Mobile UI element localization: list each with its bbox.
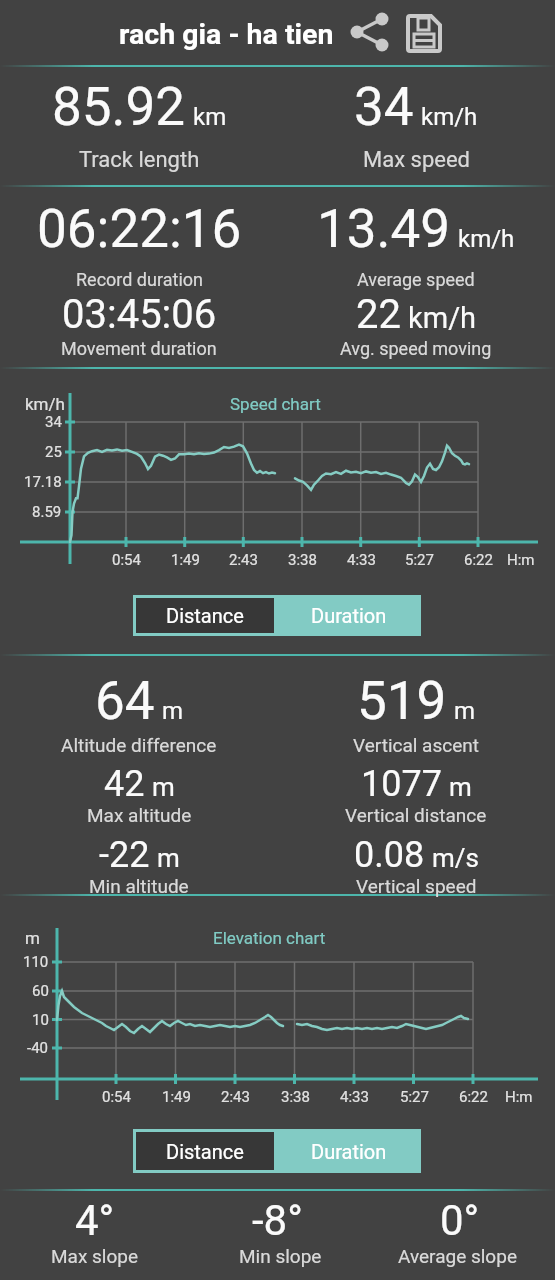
staticText: Movement duration (61, 338, 217, 359)
staticText: m (157, 843, 180, 873)
staticText: Vertical distance (345, 804, 487, 826)
staticText: 0:54 (102, 1088, 131, 1106)
staticText: 13.49 (317, 198, 451, 260)
staticText: 03:45:06 (62, 291, 217, 338)
staticText: km/h (458, 225, 515, 253)
staticText: 3:38 (281, 1088, 310, 1106)
staticText: 42 (104, 763, 145, 805)
staticText: 17.18 (24, 473, 62, 491)
staticText: Duration (311, 604, 387, 627)
staticText: Elevation chart (213, 928, 326, 948)
staticText: km/h (25, 394, 65, 414)
staticText: 2:43 (229, 551, 258, 569)
staticText: Min slope (239, 1245, 322, 1267)
staticText: 1:49 (171, 551, 200, 569)
staticText: 110 (23, 953, 49, 971)
staticText: 8.59 (32, 503, 62, 521)
staticText: 06:22:16 (37, 198, 242, 260)
button[interactable]: Duration (277, 595, 421, 636)
staticText: 85.92 (52, 76, 186, 138)
staticText: km/h (408, 301, 477, 335)
staticText: 60 (32, 982, 49, 1000)
staticText: Record duration (76, 269, 203, 290)
staticText: 6:22 (464, 551, 493, 569)
staticText: 0° (440, 1196, 480, 1245)
staticText: 3:38 (288, 551, 317, 569)
staticText: Average slope (398, 1245, 517, 1267)
staticText: 4:33 (340, 1088, 369, 1106)
staticText: m (449, 772, 472, 802)
staticText: Speed chart (230, 394, 321, 414)
staticText: Max speed (363, 147, 470, 173)
staticText: 6:22 (459, 1088, 488, 1106)
staticText: 0.08 (354, 834, 425, 876)
staticText: 34 (354, 76, 414, 138)
button[interactable] (335, 10, 379, 54)
staticText: 0:54 (112, 551, 141, 569)
staticText: Duration (311, 1140, 387, 1163)
staticText: km/h (421, 103, 478, 131)
staticText: Distance (166, 604, 244, 627)
staticText: Max slope (51, 1245, 139, 1267)
staticText: 10 (32, 1011, 49, 1029)
staticText: 519 (357, 670, 447, 732)
staticText: Average speed (357, 269, 475, 290)
staticText: H:m (505, 1088, 533, 1106)
staticText: Distance (166, 1140, 244, 1163)
staticText: Vertical ascent (353, 734, 479, 756)
staticText: 64 (95, 670, 155, 732)
staticText: m/s (432, 843, 479, 873)
staticText: 5:27 (405, 551, 434, 569)
staticText: km (193, 103, 227, 131)
button[interactable] (398, 10, 442, 54)
staticText: Vertical speed (356, 875, 477, 897)
staticText: m (162, 697, 184, 725)
button[interactable]: Duration (277, 1129, 421, 1173)
staticText: rach gia - ha tien (119, 18, 334, 51)
button[interactable]: Distance (136, 598, 274, 633)
staticText: Altitude difference (61, 734, 217, 756)
staticText: Track length (79, 147, 200, 173)
staticText: 22 (356, 291, 401, 338)
staticText: Max altitude (87, 804, 192, 826)
staticText: 34 (45, 413, 62, 431)
staticText: 25 (45, 443, 62, 461)
staticText: 4° (75, 1196, 115, 1245)
staticText: -22 (99, 834, 150, 876)
button[interactable]: Distance (136, 1132, 274, 1170)
staticText: 1:49 (162, 1088, 191, 1106)
staticText: -8° (252, 1196, 303, 1245)
staticText: 5:27 (400, 1088, 429, 1106)
staticText: m (25, 928, 40, 948)
staticText: 1077 (361, 763, 442, 805)
staticText: Min altitude (89, 875, 189, 897)
staticText: Avg. speed moving (340, 338, 492, 359)
staticText: -40 (27, 1039, 49, 1057)
button[interactable] (0, 0, 555, 65)
staticText: H:m (507, 551, 535, 569)
staticText: m (454, 697, 476, 725)
staticText: 4:33 (347, 551, 376, 569)
staticText: 2:43 (221, 1088, 250, 1106)
staticText: m (152, 772, 175, 802)
